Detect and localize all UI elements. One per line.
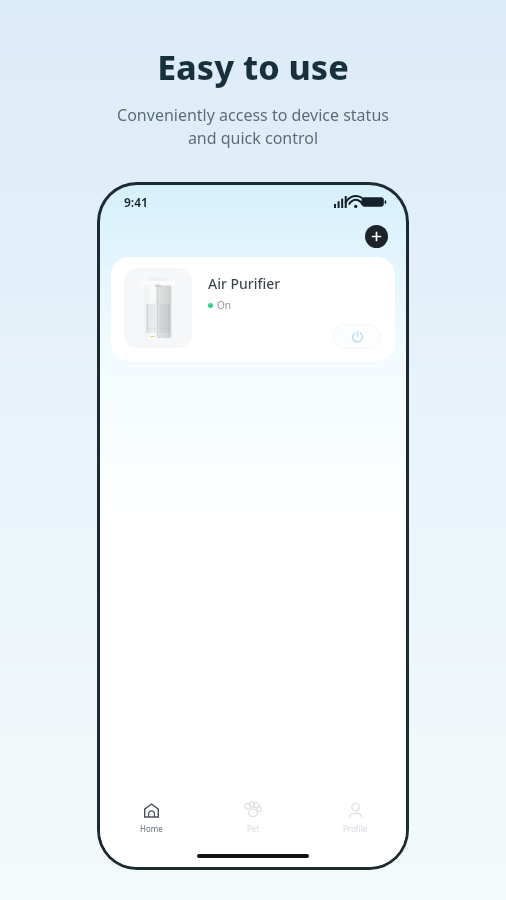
button[interactable]: Profile xyxy=(304,800,406,836)
button[interactable]: Air Purifier xyxy=(111,257,395,361)
staticText: 9:41 xyxy=(124,194,148,210)
staticText: Profile xyxy=(343,823,368,834)
staticText: On xyxy=(217,298,231,312)
staticText: Air Purifier xyxy=(208,274,281,293)
staticText: Home xyxy=(140,823,163,834)
staticText: Easy to use xyxy=(157,44,349,90)
button[interactable]: Home xyxy=(100,800,202,836)
button[interactable]: Pet xyxy=(202,800,304,836)
staticText: Conveniently access to device status and… xyxy=(117,104,389,149)
button[interactable]: Add device xyxy=(365,225,388,248)
button[interactable]: Power toggle xyxy=(333,324,381,349)
staticText: Pet xyxy=(247,823,260,834)
